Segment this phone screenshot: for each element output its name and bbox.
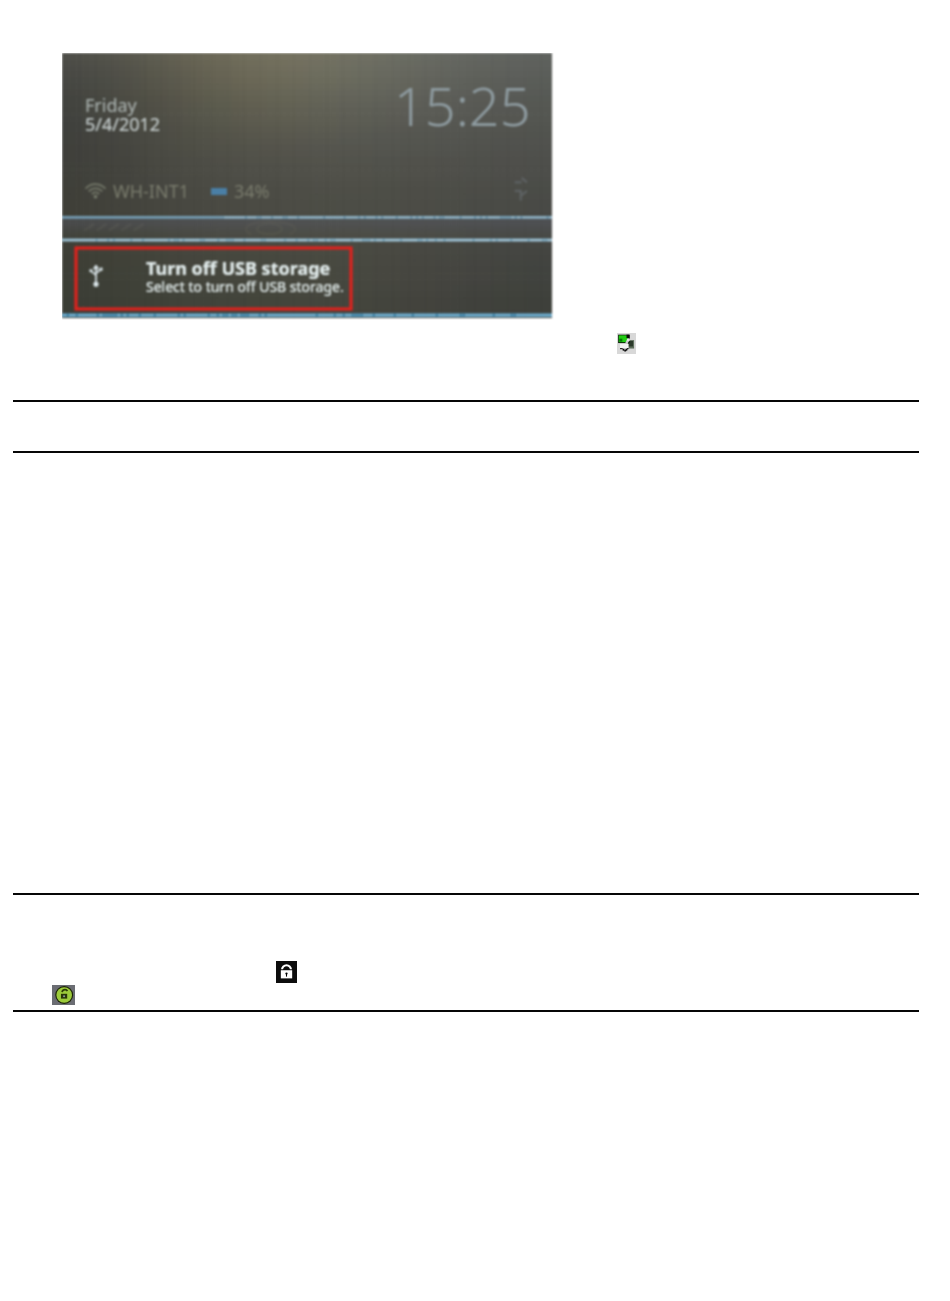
staticText: Select to turn off USB storage. xyxy=(146,277,344,296)
staticText: 15:25 xyxy=(394,68,531,142)
staticText: Turn off USB storage xyxy=(146,256,331,281)
button[interactable]: Locked xyxy=(276,961,297,983)
staticText: Friday xyxy=(85,93,137,118)
staticText: 5/4/2012 xyxy=(85,112,161,137)
button[interactable]: Network connection xyxy=(617,333,636,354)
staticText: WH-INT1 xyxy=(113,179,189,204)
button[interactable] xyxy=(76,248,351,309)
button[interactable]: Unlocked xyxy=(52,985,75,1005)
staticText: 34% xyxy=(234,179,270,204)
